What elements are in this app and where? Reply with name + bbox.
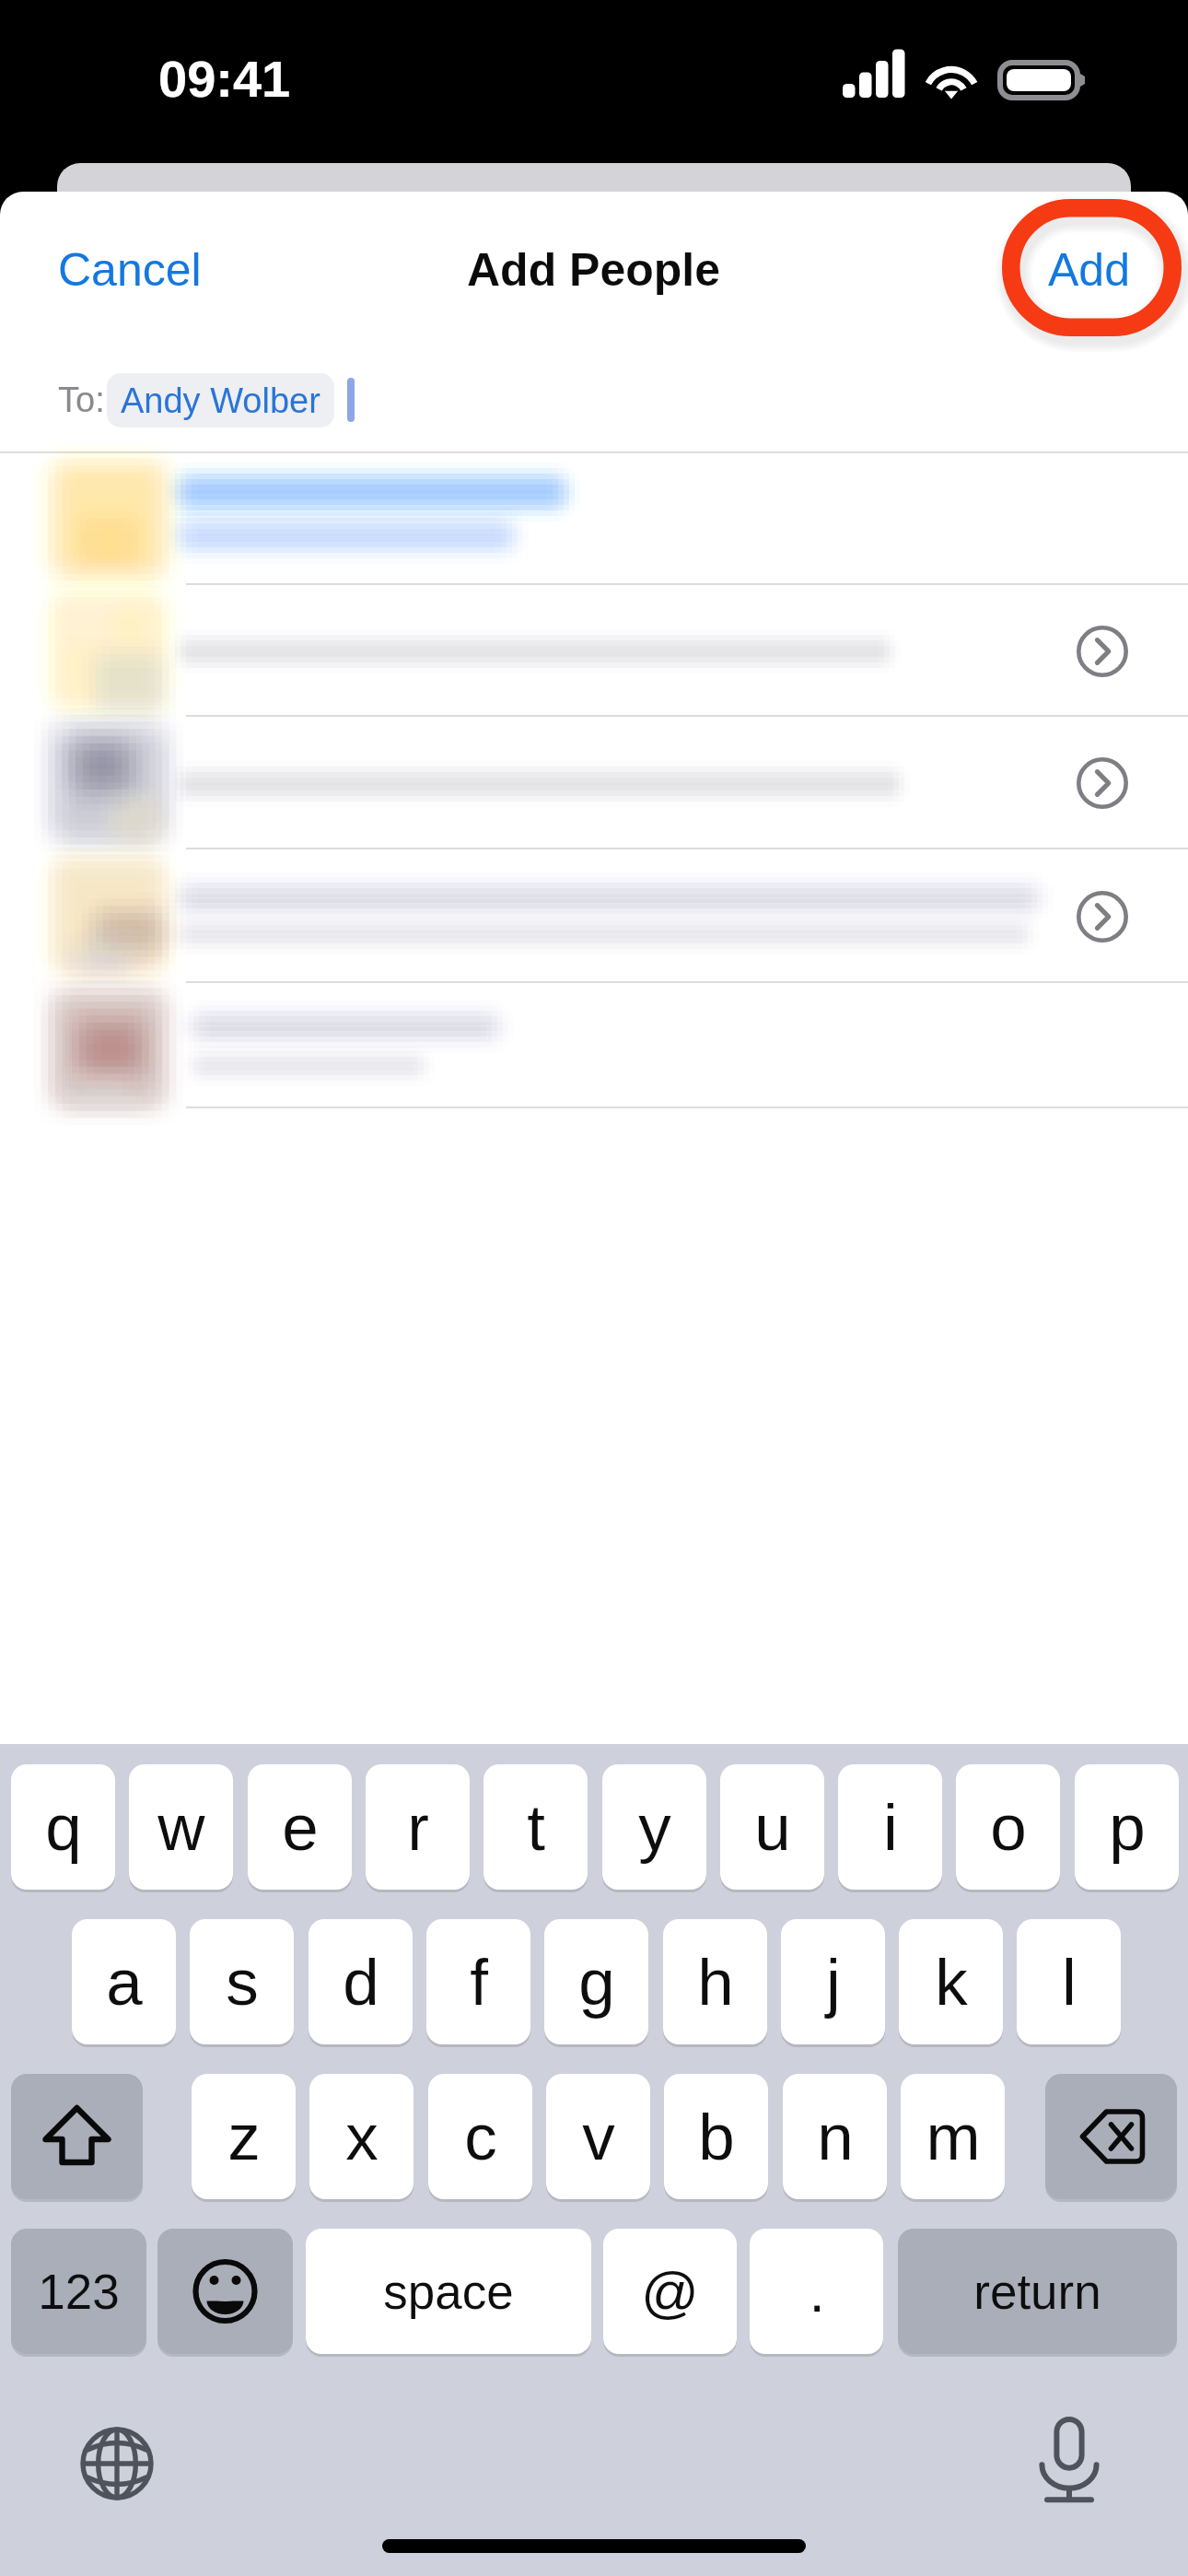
button[interactable]: Andy Wolber	[107, 373, 334, 427]
button[interactable]: More info	[1077, 626, 1128, 677]
button[interactable]: g	[544, 1919, 648, 2044]
staticText: k	[935, 1946, 968, 2019]
staticText: g	[578, 1946, 615, 2019]
staticText: r	[407, 1791, 429, 1864]
staticText: l	[1062, 1946, 1077, 2019]
staticText: b	[698, 2101, 735, 2173]
button[interactable]: f	[426, 1919, 530, 2044]
button[interactable]: p	[1075, 1764, 1179, 1890]
button[interactable]: .	[750, 2229, 883, 2354]
staticText: .	[809, 2260, 825, 2324]
staticText: o	[990, 1791, 1027, 1864]
staticText: Add	[1048, 244, 1130, 296]
button[interactable]: Shift	[11, 2074, 143, 2199]
button[interactable]: c	[428, 2074, 532, 2199]
button[interactable]: v	[546, 2074, 650, 2199]
staticText: d	[343, 1946, 379, 2019]
staticText: y	[638, 1791, 671, 1864]
staticText: n	[817, 2101, 854, 2173]
button[interactable]: More info	[0, 585, 1188, 717]
button[interactable]: i	[838, 1764, 942, 1890]
button[interactable]: t	[483, 1764, 588, 1890]
staticText: c	[464, 2101, 497, 2173]
staticText: s	[226, 1946, 259, 2019]
button[interactable]: d	[309, 1919, 413, 2044]
button[interactable]: k	[899, 1919, 1003, 2044]
staticText: Cancel	[58, 244, 202, 296]
staticText: i	[883, 1791, 898, 1864]
button[interactable]: 123	[11, 2229, 146, 2354]
button[interactable]: Backspace	[1045, 2074, 1177, 2199]
button[interactable]: More info	[1077, 891, 1128, 943]
button[interactable]: j	[781, 1919, 885, 2044]
button[interactable]: More info	[0, 849, 1188, 983]
button[interactable]: y	[602, 1764, 706, 1890]
staticText: @	[641, 2260, 699, 2324]
button[interactable]: w	[129, 1764, 233, 1890]
button[interactable]: @	[603, 2229, 737, 2354]
button[interactable]: More info	[0, 717, 1188, 849]
staticText: w	[157, 1791, 205, 1864]
button[interactable]: n	[783, 2074, 887, 2199]
button[interactable]: h	[663, 1919, 767, 2044]
staticText: x	[345, 2101, 379, 2173]
button[interactable]: Dictate	[1032, 2417, 1106, 2505]
button[interactable]: r	[366, 1764, 470, 1890]
staticText: h	[697, 1946, 734, 2019]
button[interactable]: space	[306, 2229, 591, 2354]
staticText: return	[973, 2265, 1101, 2319]
staticText: a	[106, 1946, 143, 2019]
button[interactable]: More info	[1077, 757, 1128, 809]
button[interactable]: u	[720, 1764, 824, 1890]
staticText: 09:41	[158, 50, 291, 108]
staticText: Add People	[467, 244, 721, 296]
button[interactable]: Change keyboard	[80, 2427, 154, 2500]
button[interactable]: return	[898, 2229, 1177, 2354]
staticText: space	[383, 2265, 514, 2319]
staticText: To:	[58, 381, 105, 419]
button[interactable]: m	[901, 2074, 1005, 2199]
button[interactable]: Cancel	[37, 231, 223, 309]
button[interactable]: b	[664, 2074, 768, 2199]
button[interactable]: s	[190, 1919, 294, 2044]
button[interactable]: q	[11, 1764, 115, 1890]
staticText: t	[527, 1791, 545, 1864]
button[interactable]: l	[1017, 1919, 1121, 2044]
staticText: z	[227, 2101, 261, 2173]
staticText: q	[45, 1791, 82, 1864]
button[interactable]: o	[956, 1764, 1060, 1890]
button[interactable]: z	[192, 2074, 296, 2199]
staticText: u	[754, 1791, 791, 1864]
button[interactable]: a	[72, 1919, 176, 2044]
button[interactable]	[0, 453, 1188, 585]
staticText: j	[826, 1946, 841, 2019]
staticText: m	[926, 2101, 981, 2173]
staticText: p	[1109, 1791, 1146, 1864]
button[interactable]: Emoji	[157, 2229, 293, 2354]
button[interactable]: e	[248, 1764, 352, 1890]
staticText: Andy Wolber	[121, 381, 320, 420]
button[interactable]: x	[309, 2074, 413, 2199]
staticText: e	[282, 1791, 319, 1864]
staticText: f	[470, 1946, 488, 2019]
button[interactable]: Add	[1027, 231, 1151, 309]
staticText: v	[582, 2101, 615, 2173]
button[interactable]	[0, 983, 1188, 1108]
staticText: 123	[38, 2265, 120, 2319]
